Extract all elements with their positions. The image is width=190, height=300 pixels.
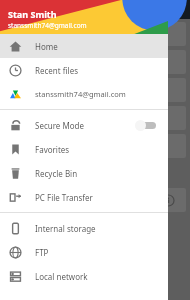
other: Internal storage: [9, 222, 22, 235]
staticText: Local network: [35, 271, 88, 282]
button[interactable]: Local network: [0, 264, 168, 288]
button[interactable]: Home: [0, 34, 168, 58]
other: Home: [9, 40, 22, 53]
staticText: PC File Transfer: [35, 192, 93, 203]
button[interactable]: Google Drive account: [0, 82, 168, 106]
staticText: Secure Mode: [35, 120, 84, 131]
button[interactable]: PC File Transfer: [0, 185, 168, 209]
staticText: Stan Smith: [8, 8, 57, 20]
other: Favorites: [9, 143, 22, 156]
button[interactable]: Recent files: [0, 58, 168, 82]
staticText: Recent files: [35, 65, 78, 76]
other: Recent files: [9, 64, 22, 77]
staticText: stanssmith74@gmail.com: [35, 89, 126, 99]
button[interactable]: FTP: [0, 240, 168, 264]
button[interactable]: Secure Mode: [0, 113, 168, 137]
other: Recycle Bin: [9, 167, 22, 180]
button[interactable]: Favorites: [0, 137, 168, 161]
staticText: Favorites: [35, 144, 70, 155]
other: PC File Transfer: [9, 191, 22, 204]
button[interactable]: Recycle Bin: [0, 161, 168, 185]
staticText: stanssmith74@gmail.com: [8, 21, 87, 30]
staticText: Internal storage: [35, 223, 96, 234]
button[interactable]: Internal storage: [0, 216, 168, 240]
other: Local network: [9, 270, 22, 283]
staticText: Recycle Bin: [35, 168, 78, 179]
other: Google Drive account: [9, 88, 22, 101]
staticText: Home: [35, 41, 58, 52]
staticText: FTP: [35, 247, 49, 258]
other: FTP: [9, 246, 22, 259]
other: Secure Mode: [9, 119, 22, 132]
